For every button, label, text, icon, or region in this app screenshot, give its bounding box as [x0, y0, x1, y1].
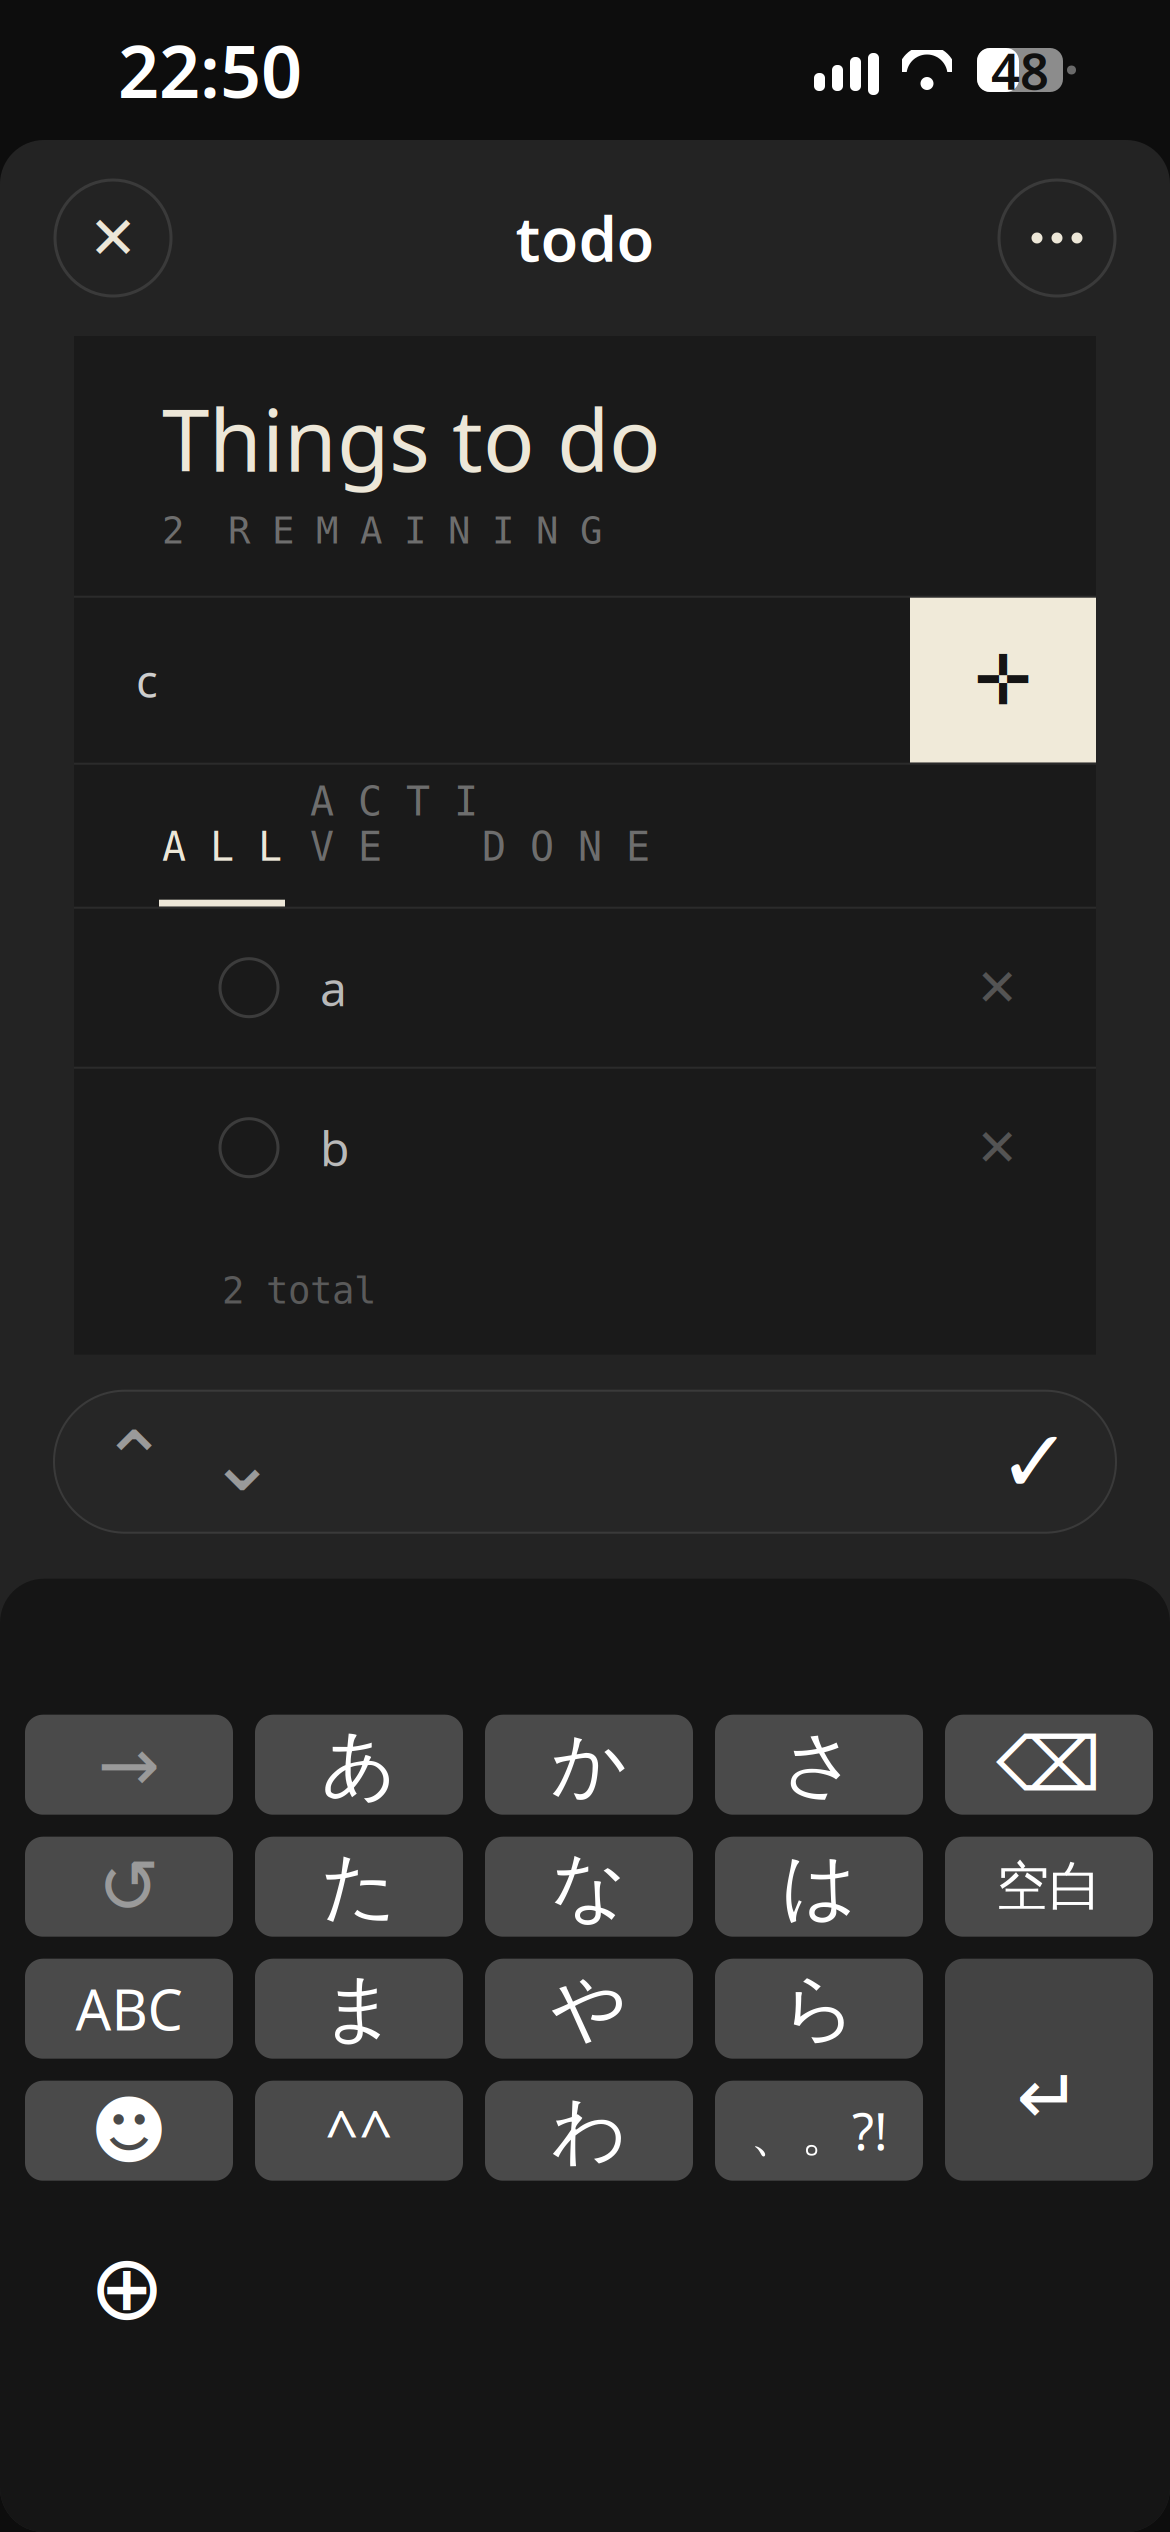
staticText: ⊕	[89, 2236, 165, 2339]
staticText: ま	[321, 1963, 397, 2054]
staticText: た	[321, 1841, 397, 1932]
staticText: c	[136, 650, 158, 710]
button[interactable]: Return	[945, 1959, 1153, 2181]
staticText: 22:50	[118, 22, 302, 118]
button[interactable]: ら	[715, 1959, 923, 2059]
button[interactable]: ☻	[25, 2081, 233, 2181]
button[interactable]: A L L	[136, 765, 308, 907]
button[interactable]: →	[25, 1715, 233, 1815]
button[interactable]: A C T I V E	[308, 765, 480, 907]
staticText: ✕	[976, 959, 1018, 1016]
button[interactable]: か	[485, 1715, 693, 1815]
staticText: さ	[781, 1719, 857, 1810]
staticText: は	[781, 1841, 857, 1932]
button[interactable]: わ	[485, 2081, 693, 2181]
button[interactable]: や	[485, 1959, 693, 2059]
button[interactable]: a	[74, 909, 1096, 1067]
staticText: ^^	[325, 2092, 393, 2170]
staticText: ✓	[998, 1412, 1072, 1512]
button[interactable]: さ	[715, 1715, 923, 1815]
staticText: わ	[551, 2085, 627, 2176]
staticText: Things to do	[162, 382, 661, 495]
button[interactable]: ↺	[25, 1837, 233, 1937]
staticText: ら	[781, 1963, 857, 2054]
staticText: な	[551, 1841, 627, 1932]
button[interactable]: Previous field	[80, 1402, 188, 1522]
staticText: 48	[991, 36, 1049, 104]
staticText: D O N E	[482, 824, 650, 870]
staticText: 2 R E M A I N I N G	[162, 509, 602, 552]
button[interactable]: Switch keyboard	[72, 2233, 182, 2343]
button[interactable]: た	[255, 1837, 463, 1937]
staticText: ↺	[97, 1844, 160, 1929]
button[interactable]: Done	[980, 1402, 1090, 1522]
button[interactable]: 、。?!	[715, 2081, 923, 2181]
staticText: ✕	[88, 205, 137, 271]
staticText: ⌃	[99, 1415, 168, 1509]
staticText: ⌄	[207, 1415, 276, 1509]
staticText: 、。?!	[750, 2097, 888, 2164]
staticText: →	[97, 1722, 160, 1807]
button[interactable]: ABC	[25, 1959, 233, 2059]
button[interactable]: 空白	[945, 1837, 1153, 1937]
button[interactable]: ⌫	[945, 1715, 1153, 1815]
button[interactable]: ^^	[255, 2081, 463, 2181]
staticText: ✕	[976, 1119, 1018, 1176]
staticText: 2 total	[222, 1269, 376, 1312]
staticText: A C T I V E	[310, 779, 478, 870]
staticText: ABC	[75, 1971, 182, 2046]
button[interactable]: あ	[255, 1715, 463, 1815]
button[interactable]: な	[485, 1837, 693, 1937]
button[interactable]: More options	[999, 180, 1115, 296]
button[interactable]: Add todo	[910, 598, 1096, 763]
button[interactable]: は	[715, 1837, 923, 1937]
staticText: や	[551, 1963, 627, 2054]
staticText: b	[320, 1116, 350, 1179]
staticText: A L L	[162, 824, 282, 870]
staticText: 空白	[996, 1854, 1102, 1919]
staticText: ☻	[90, 2088, 168, 2173]
button[interactable]: b	[74, 1069, 1096, 1227]
staticText: ↵	[1016, 2053, 1081, 2141]
button[interactable]: D O N E	[480, 765, 652, 907]
staticText: todo	[515, 197, 654, 279]
staticText: か	[551, 1719, 627, 1810]
staticText: あ	[321, 1719, 397, 1810]
staticText: a	[320, 956, 347, 1019]
button[interactable]: Close	[55, 180, 171, 296]
staticText: ⌫	[996, 1722, 1102, 1807]
button[interactable]: ま	[255, 1959, 463, 2059]
button[interactable]: Next field	[188, 1402, 296, 1522]
staticText: ✛	[974, 641, 1032, 719]
